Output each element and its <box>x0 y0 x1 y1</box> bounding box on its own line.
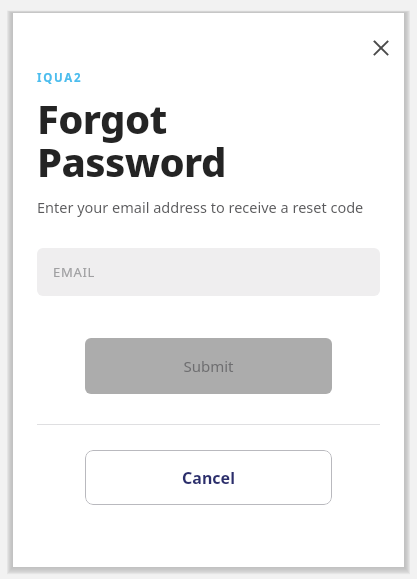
button[interactable]: Close <box>358 25 404 71</box>
staticText: IQUA2 <box>37 70 83 86</box>
staticText: Submit <box>183 356 234 376</box>
staticText: Forgot Password <box>37 91 226 188</box>
button[interactable]: Submit <box>85 338 332 394</box>
button[interactable]: EMAIL <box>37 248 380 296</box>
button[interactable]: Cancel <box>85 450 332 505</box>
staticText: Enter your email address to receive a re… <box>37 197 364 217</box>
staticText: Cancel <box>182 467 235 489</box>
staticText: EMAIL <box>53 263 96 281</box>
